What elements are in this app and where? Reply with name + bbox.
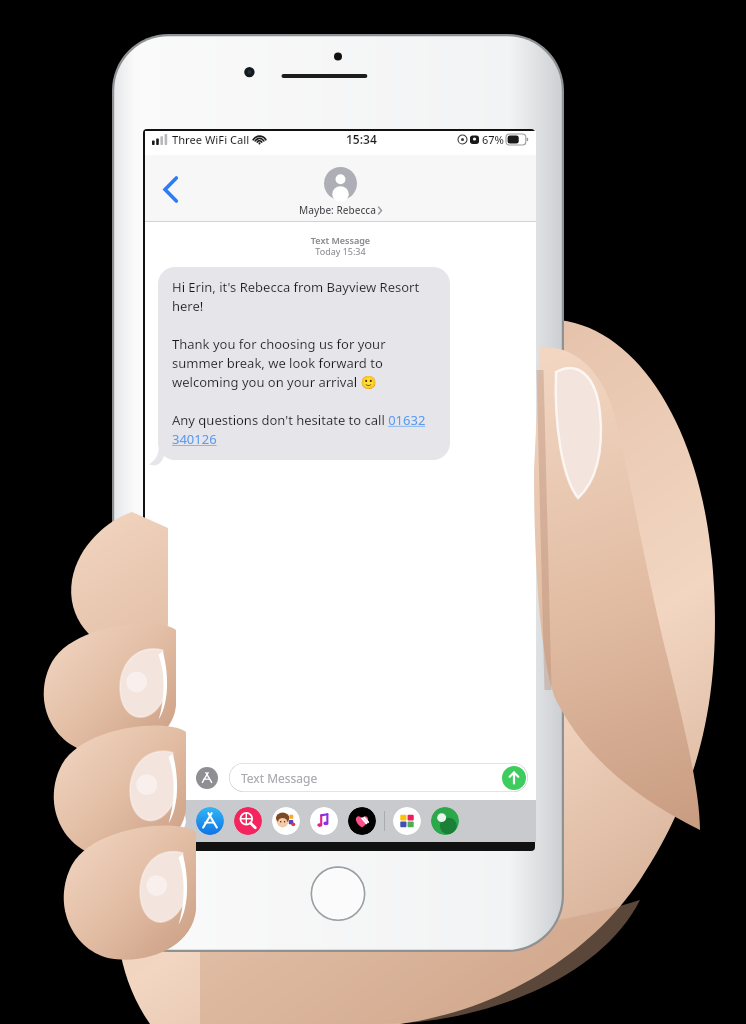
button[interactable]: Back — [151, 170, 189, 208]
button[interactable]: Maybe: Rebecca — [299, 167, 382, 217]
button[interactable]: Music — [310, 807, 338, 835]
staticText: Maybe: Rebecca — [299, 203, 376, 217]
staticText: Three WiFi Call — [172, 132, 250, 147]
button[interactable]: Photos — [158, 807, 186, 835]
staticText: Hi Erin, it's Rebecca from Bayview Resor… — [172, 278, 438, 448]
button[interactable]: App Store — [196, 807, 224, 835]
staticText: 15:34 — [346, 131, 377, 147]
button[interactable]: App — [431, 807, 459, 835]
button[interactable]: Digital Touch — [348, 807, 376, 835]
button[interactable]: Send — [502, 766, 526, 790]
button[interactable]: Camera — [156, 763, 186, 793]
button[interactable]: Image Search — [234, 807, 262, 835]
button[interactable]: Collage — [393, 807, 421, 835]
button[interactable]: App Store — [192, 763, 222, 793]
staticText: 67% — [482, 132, 504, 147]
staticText: Text Message — [241, 770, 318, 786]
button[interactable]: Memoji — [272, 807, 300, 835]
staticText: Text Message Today 15:34 — [145, 234, 536, 258]
button[interactable]: Text Message — [229, 763, 528, 792]
